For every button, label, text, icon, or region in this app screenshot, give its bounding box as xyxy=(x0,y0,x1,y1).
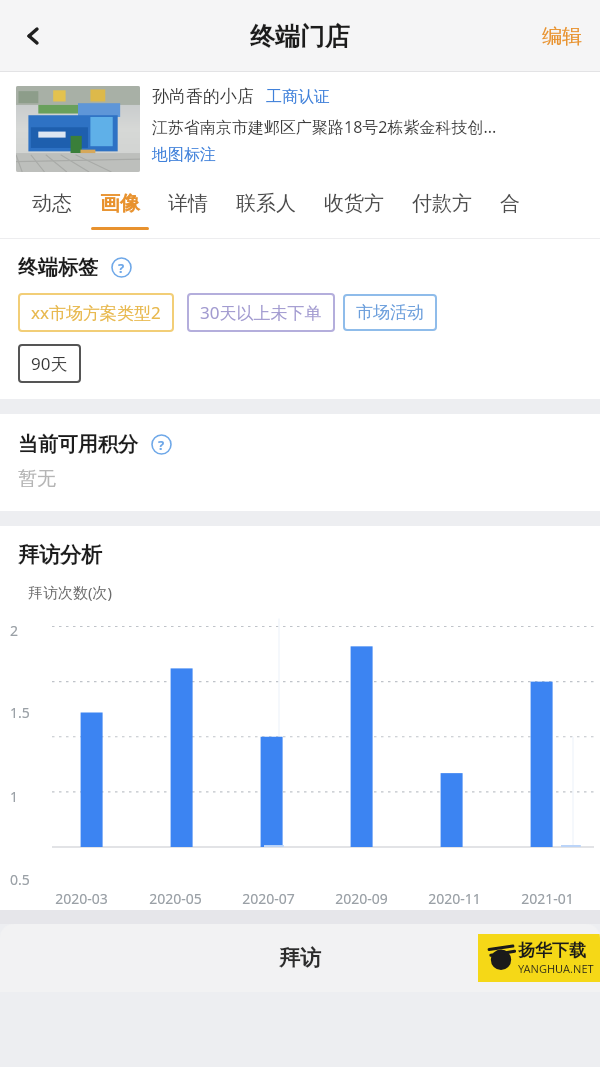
staticText: 画像 xyxy=(100,191,140,216)
staticText: xx市场方案类型2 xyxy=(31,301,161,324)
button[interactable]: Help xyxy=(151,434,172,455)
staticText: 拜访次数(次) xyxy=(28,582,113,602)
staticText: 地图标注 xyxy=(152,145,216,165)
staticText: 孙尚香的小店 xyxy=(152,86,254,107)
button[interactable]: 90天 xyxy=(18,344,81,383)
button[interactable]: 拜访 xyxy=(0,924,600,992)
button[interactable]: 收货方 xyxy=(310,182,398,225)
staticText: 30天以上未下单 xyxy=(200,301,322,324)
button[interactable]: 合 xyxy=(486,182,534,225)
staticText: YANGHUA.NET xyxy=(518,961,594,976)
staticText: 2020-05 xyxy=(149,889,202,908)
button[interactable]: 动态 xyxy=(18,182,86,225)
button[interactable]: 30天以上未下单 xyxy=(187,293,335,332)
button[interactable]: xx市场方案类型2 xyxy=(18,293,174,332)
staticText: 暂无 xyxy=(18,467,56,491)
staticText: 90天 xyxy=(31,352,68,375)
staticText: 拜访分析 xyxy=(18,542,102,568)
staticText: 2 xyxy=(10,621,19,640)
staticText: 1.5 xyxy=(10,703,30,722)
button[interactable]: 付款方 xyxy=(398,182,486,225)
staticText: 详情 xyxy=(168,191,208,216)
staticText: 1 xyxy=(10,787,19,806)
staticText: 终端标签 xyxy=(18,255,98,280)
button[interactable]: 编辑 xyxy=(524,10,600,63)
staticText: 联系人 xyxy=(236,191,296,216)
button[interactable]: 地图标注 xyxy=(152,145,216,165)
button[interactable]: 联系人 xyxy=(222,182,310,225)
staticText: 2020-07 xyxy=(242,889,295,908)
staticText: 收货方 xyxy=(324,191,384,216)
staticText: 拜访 xyxy=(279,945,321,971)
staticText: 编辑 xyxy=(542,24,582,49)
staticText: ? xyxy=(118,259,125,277)
staticText: ? xyxy=(158,436,165,454)
staticText: 当前可用积分 xyxy=(18,432,138,457)
staticText: 扬华下载 xyxy=(518,940,586,961)
staticText: 江苏省南京市建邺区广聚路18号2栋紫金科技创... xyxy=(152,116,497,138)
staticText: 2020-09 xyxy=(335,889,388,908)
button[interactable]: 详情 xyxy=(154,182,222,225)
staticText: 合 xyxy=(500,191,520,216)
staticText: 2021-01 xyxy=(521,889,574,908)
button[interactable]: Back xyxy=(6,9,60,63)
staticText: 动态 xyxy=(32,191,72,216)
staticText: 0.5 xyxy=(10,870,30,889)
button[interactable]: Help xyxy=(111,257,132,278)
button[interactable]: 画像 xyxy=(86,182,154,230)
staticText: 市场活动 xyxy=(356,302,424,323)
button[interactable]: 市场活动 xyxy=(343,294,437,331)
button[interactable]: 孙尚香的小店 xyxy=(0,72,600,182)
staticText: 付款方 xyxy=(412,191,472,216)
staticText: 终端门店 xyxy=(250,21,350,52)
staticText: 工商认证 xyxy=(266,87,330,107)
staticText: 2020-11 xyxy=(428,889,481,908)
staticText: 2020-03 xyxy=(55,889,108,908)
